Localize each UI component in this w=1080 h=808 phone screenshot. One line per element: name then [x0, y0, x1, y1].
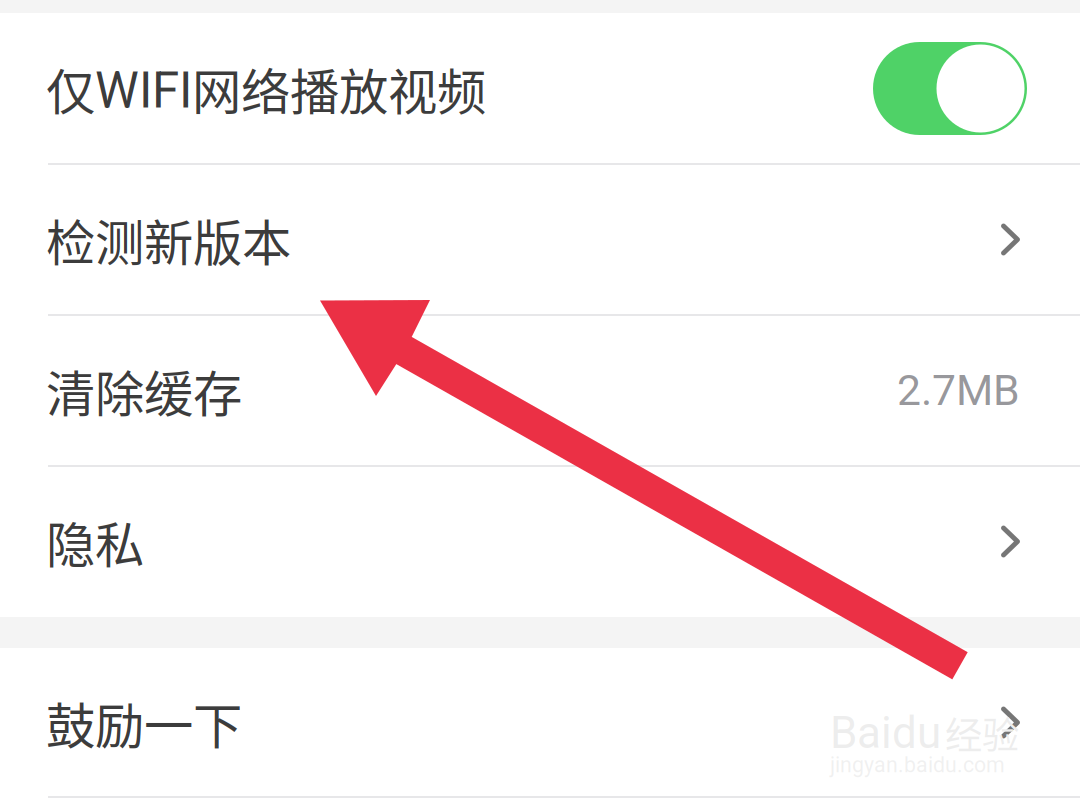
staticText: 清除缓存: [46, 355, 242, 426]
staticText: 检测新版本: [46, 204, 291, 275]
staticText: 2.7MB: [897, 365, 1020, 415]
staticText: 隐私: [46, 506, 144, 577]
staticText: 经验: [945, 706, 1019, 760]
staticText: 仅WIFI网络播放视频: [46, 54, 486, 123]
button[interactable]: 清除缓存: [0, 315, 1080, 466]
staticText: jingyan.baidu.com: [830, 752, 1005, 777]
button[interactable]: 检测新版本: [0, 164, 1080, 315]
button[interactable]: 仅WIFI网络播放视频: [0, 13, 1080, 164]
staticText: 鼓励一下: [46, 687, 242, 758]
button[interactable]: 鼓励一下: [0, 648, 1080, 797]
button[interactable]: 隐私: [0, 466, 1080, 617]
staticText: Baidu: [830, 707, 941, 759]
